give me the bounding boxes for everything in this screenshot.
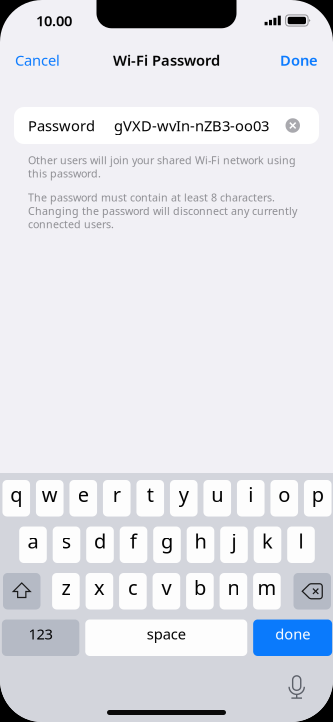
staticText: k (262, 527, 273, 554)
staticText: b (194, 574, 206, 601)
staticText: o (278, 481, 290, 508)
staticText: gVXD-wvIn-nZB3-oo03 (114, 116, 269, 135)
staticText: n (227, 574, 239, 601)
button[interactable]: l (287, 526, 315, 563)
staticText: s (61, 527, 71, 554)
button[interactable]: y (170, 480, 197, 516)
staticText: Wi-Fi Password (113, 50, 220, 70)
staticText: g (161, 527, 173, 554)
staticText: m (257, 574, 276, 601)
staticText: v (161, 574, 171, 601)
button[interactable]: r (103, 480, 130, 516)
staticText: Changing the password will disconnect an… (28, 204, 297, 218)
button[interactable]: o (270, 480, 298, 516)
button[interactable]: Clear text (285, 118, 300, 133)
button[interactable]: c (119, 573, 147, 609)
button[interactable]: done (253, 619, 332, 656)
staticText: j (231, 527, 236, 554)
staticText: w (42, 481, 58, 508)
staticText: this password. (28, 166, 101, 181)
staticText: y (179, 481, 189, 508)
staticText: i (248, 481, 253, 508)
staticText: 123 (29, 624, 53, 643)
staticText: Other users will join your shared Wi-Fi … (28, 153, 296, 167)
button[interactable]: k (254, 526, 281, 563)
button[interactable]: Shift (3, 573, 40, 609)
button[interactable]: m (253, 573, 281, 609)
staticText: Password (28, 116, 95, 135)
button[interactable]: Done (265, 44, 333, 76)
staticText: q (10, 481, 22, 508)
button[interactable]: x (86, 573, 113, 609)
button[interactable]: z (52, 573, 80, 609)
button[interactable]: i (237, 480, 264, 516)
staticText: c (128, 574, 138, 601)
button[interactable]: space (85, 619, 247, 656)
button[interactable]: Dictate (289, 675, 304, 699)
staticText: u (211, 481, 223, 508)
button[interactable]: e (69, 480, 97, 516)
button[interactable]: n (220, 573, 247, 609)
staticText: a (27, 527, 38, 554)
button[interactable]: j (220, 526, 248, 563)
button[interactable]: Delete (293, 573, 331, 609)
staticText: Done (280, 50, 318, 70)
button[interactable]: u (203, 480, 231, 516)
button[interactable]: v (153, 573, 180, 609)
button[interactable]: d (86, 526, 114, 563)
staticText: t (147, 481, 154, 508)
button[interactable]: q (2, 480, 30, 516)
button[interactable]: a (19, 526, 47, 563)
button[interactable]: Cancel (0, 44, 75, 76)
button[interactable]: s (53, 526, 80, 563)
button[interactable]: b (186, 573, 214, 609)
staticText: space (147, 624, 186, 643)
button[interactable]: w (36, 480, 63, 516)
button[interactable]: f (120, 526, 147, 563)
staticText: The password must contain at least 8 cha… (28, 190, 275, 204)
button[interactable]: p (304, 480, 331, 516)
staticText: e (78, 481, 89, 508)
staticText: Cancel (15, 50, 60, 70)
staticText: r (113, 481, 121, 508)
staticText: f (130, 527, 137, 554)
button[interactable]: 123 (2, 619, 79, 656)
staticText: x (94, 574, 105, 601)
staticText: z (61, 574, 70, 601)
button[interactable]: g (153, 526, 181, 563)
staticText: h (194, 527, 206, 554)
button[interactable]: h (187, 526, 214, 563)
staticText: d (94, 527, 106, 554)
staticText: 10.00 (36, 11, 72, 30)
button[interactable]: t (136, 480, 164, 516)
staticText: l (298, 527, 303, 554)
staticText: done (275, 624, 310, 643)
staticText: connected users. (28, 217, 114, 231)
staticText: p (312, 481, 324, 508)
